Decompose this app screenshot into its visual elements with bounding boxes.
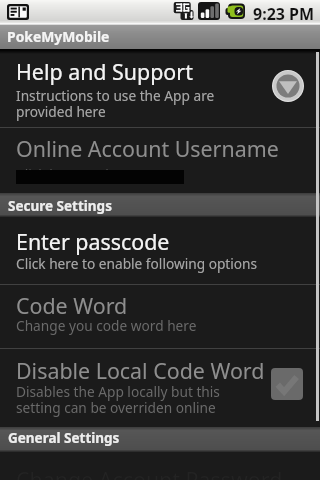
button[interactable]: Code Word bbox=[0, 285, 320, 348]
staticText: General Settings bbox=[8, 429, 120, 447]
staticText: Instructions to use the App are bbox=[16, 86, 215, 105]
button[interactable]: Enter passcode bbox=[0, 217, 320, 284]
button[interactable]: Help and Support bbox=[0, 48, 320, 127]
staticText: 9:23 PM bbox=[253, 3, 315, 25]
staticText: Click here to enable following options bbox=[16, 254, 258, 273]
staticText: Click here to change bbox=[16, 165, 147, 184]
button[interactable]: Expand help and support bbox=[272, 70, 304, 102]
staticText: provided here bbox=[16, 102, 106, 121]
staticText: Change you code word here bbox=[16, 316, 197, 335]
staticText: Help and Support bbox=[16, 57, 193, 86]
staticText: Online Account Username bbox=[16, 134, 279, 163]
staticText: Secure Settings bbox=[8, 197, 112, 215]
button[interactable]: Disable Local Code Word bbox=[0, 349, 320, 427]
button[interactable]: Online Account Username bbox=[0, 128, 320, 193]
staticText: Enter passcode bbox=[16, 227, 170, 256]
staticText: Disables the App locally but this bbox=[16, 382, 220, 401]
staticText: Code Word bbox=[16, 291, 128, 320]
staticText: Disable Local Code Word bbox=[16, 356, 265, 385]
staticText: PokeMyMobile bbox=[7, 27, 110, 46]
button[interactable]: Disable local code word checkbox bbox=[271, 368, 303, 400]
staticText: setting can be overriden online bbox=[16, 398, 216, 417]
